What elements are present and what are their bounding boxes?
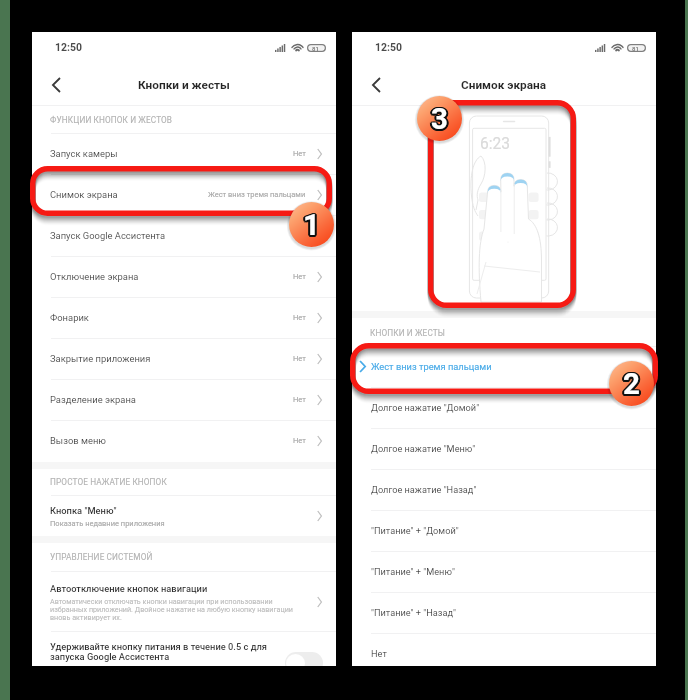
staticText: Снимок экрана: [50, 189, 118, 200]
staticText: ФУНКЦИИ КНОПОК И ЖЕСТОВ: [50, 115, 173, 125]
staticText: Нет: [293, 149, 306, 158]
staticText: 3: [431, 101, 448, 136]
button[interactable]: Запуск Google Ассистента: [32, 215, 336, 256]
staticText: Нет: [371, 648, 387, 659]
button[interactable]: "Питание" + "Меню": [352, 551, 656, 592]
button[interactable]: Долгое нажатие "Назад": [352, 469, 656, 510]
button[interactable]: Отключение экрана: [32, 256, 336, 297]
staticText: 2: [623, 369, 640, 404]
staticText: 1: [305, 209, 322, 244]
button[interactable]: Удерживайте кнопку питания в течение 0.5…: [32, 631, 336, 666]
staticText: 3: [429, 103, 446, 138]
staticText: Показать недавние приложения: [50, 519, 165, 528]
button[interactable]: Долгое нажатие "Домой": [352, 387, 656, 428]
staticText: 1: [304, 207, 321, 242]
staticText: Кнопки и жесты: [138, 78, 230, 92]
button[interactable]: Разделение экрана: [32, 379, 336, 420]
staticText: 2: [622, 366, 639, 401]
button[interactable]: Back: [42, 71, 70, 99]
staticText: Запуск камеры: [50, 148, 118, 159]
staticText: 1: [305, 208, 322, 243]
staticText: 3: [430, 101, 447, 136]
button[interactable]: Нет: [352, 633, 656, 674]
staticText: 2: [625, 367, 642, 402]
staticText: "Питание" + "Меню": [371, 566, 455, 577]
staticText: Автоотключение кнопок навигации: [50, 583, 208, 594]
staticText: КНОПКИ И ЖЕСТЫ: [370, 328, 446, 338]
staticText: 2: [623, 366, 640, 401]
staticText: "Питание" + "Назад": [371, 607, 456, 618]
staticText: 1: [301, 208, 318, 243]
staticText: 12:50: [375, 41, 403, 53]
staticText: 2: [623, 367, 640, 402]
staticText: Удерживайте кнопку питания в течение 0.5…: [50, 641, 290, 663]
staticText: Долгое нажатие "Меню": [371, 443, 476, 454]
button[interactable]: Долгое нажатие "Меню": [352, 428, 656, 469]
staticText: УПРАВЛЕНИЕ СИСТЕМОЙ: [50, 552, 153, 562]
staticText: 81: [632, 45, 639, 52]
staticText: Нет: [293, 272, 306, 281]
button[interactable]: "Питание" + "Домой": [352, 510, 656, 551]
staticText: 1: [304, 210, 321, 245]
staticText: Долгое нажатие "Назад": [371, 484, 477, 495]
staticText: 3: [432, 104, 449, 139]
staticText: 3: [431, 104, 448, 139]
button[interactable]: "Питание" + "Назад": [352, 592, 656, 633]
button[interactable]: Кнопка "Меню": [32, 495, 336, 537]
staticText: 2: [624, 369, 641, 404]
staticText: 3: [429, 102, 446, 137]
button[interactable]: Запуск камеры: [32, 133, 336, 174]
staticText: 2: [621, 367, 638, 402]
staticText: 2: [622, 369, 639, 404]
staticText: 2: [625, 368, 642, 403]
staticText: 1: [302, 210, 319, 245]
staticText: Фонарик: [50, 312, 89, 323]
staticText: 6:23: [480, 135, 511, 153]
staticText: 2: [624, 369, 641, 404]
staticText: Нет: [293, 313, 306, 322]
button[interactable]: Снимок экрана: [32, 174, 336, 215]
staticText: 3: [430, 104, 447, 139]
staticText: 3: [430, 104, 447, 139]
button[interactable]: Жест вниз тремя пальцами: [352, 346, 656, 387]
staticText: Нет: [293, 395, 306, 404]
staticText: Закрытие приложения: [50, 353, 151, 364]
button[interactable]: Автоотключение кнопок навигации: [32, 571, 336, 632]
staticText: 3: [432, 101, 449, 136]
staticText: Жест вниз тремя пальцами: [371, 361, 492, 372]
staticText: 3: [433, 102, 450, 137]
staticText: 2: [621, 367, 638, 402]
staticText: 81: [312, 45, 319, 52]
staticText: Запуск Google Ассистента: [50, 230, 166, 241]
staticText: 1: [305, 208, 322, 243]
staticText: Вызов меню: [50, 435, 106, 446]
button[interactable]: Вызов меню: [32, 420, 336, 461]
button[interactable]: Фонарик: [32, 297, 336, 338]
staticText: 12:50: [55, 41, 83, 53]
staticText: 3: [432, 101, 449, 136]
staticText: Нет: [293, 436, 306, 445]
button[interactable]: Закрытие приложения: [32, 338, 336, 379]
staticText: 1: [303, 207, 320, 242]
staticText: ПРОСТОЕ НАЖАТИЕ КНОПОК: [50, 477, 167, 487]
staticText: Снимок экрана: [461, 78, 547, 92]
staticText: 2: [624, 366, 641, 401]
staticText: 1: [304, 207, 321, 242]
staticText: Кнопка "Меню": [50, 505, 117, 516]
staticText: Долгое нажатие "Домой": [371, 402, 480, 413]
staticText: 3: [429, 102, 446, 137]
staticText: 2: [622, 366, 639, 401]
button[interactable]: [285, 652, 323, 674]
staticText: 3: [431, 102, 448, 137]
staticText: 3: [430, 101, 447, 136]
staticText: 2: [624, 366, 641, 401]
staticText: 1: [301, 209, 318, 244]
staticText: 1: [304, 210, 321, 245]
button[interactable]: Back: [362, 71, 390, 99]
staticText: 2: [625, 367, 642, 402]
staticText: 2: [622, 369, 639, 404]
staticText: Отключение экрана: [50, 271, 139, 282]
staticText: 1: [303, 210, 320, 245]
staticText: 1: [302, 210, 319, 245]
staticText: 3: [433, 103, 450, 138]
